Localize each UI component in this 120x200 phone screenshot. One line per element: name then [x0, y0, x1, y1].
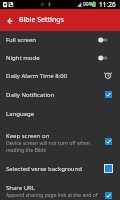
button[interactable]: Language [0, 104, 120, 124]
staticText: Daily Alarm Time 8:00 [6, 72, 68, 80]
button[interactable]: Daily Alarm Time 8:00 [0, 67, 120, 85]
button[interactable]: Night mode [0, 49, 120, 67]
staticText: Full screen [6, 36, 37, 44]
button[interactable]: Share URL [0, 178, 120, 199]
staticText: Selected verse background [6, 165, 82, 173]
staticText: Append sharing page link at the end of t… [6, 192, 103, 199]
staticText: Share URL [6, 184, 35, 192]
staticText: 11:26 [99, 0, 116, 9]
staticText: Night mode [6, 54, 40, 62]
staticText: Keep screen on [6, 132, 50, 140]
staticText: 90% [83, 1, 93, 8]
button[interactable]: Full screen [0, 31, 120, 49]
staticText: Daily Notification [6, 91, 55, 99]
button[interactable]: Back [0, 11, 19, 30]
button[interactable]: Selected verse background [0, 160, 120, 178]
button[interactable]: Daily Notification [0, 85, 120, 104]
staticText: Bible Settings [19, 15, 64, 25]
button[interactable]: Keep screen on [0, 124, 120, 160]
other: Set alarm time [104, 71, 112, 79]
staticText: Language [6, 110, 35, 118]
staticText: Device screen will not turn off when rea… [6, 140, 102, 153]
